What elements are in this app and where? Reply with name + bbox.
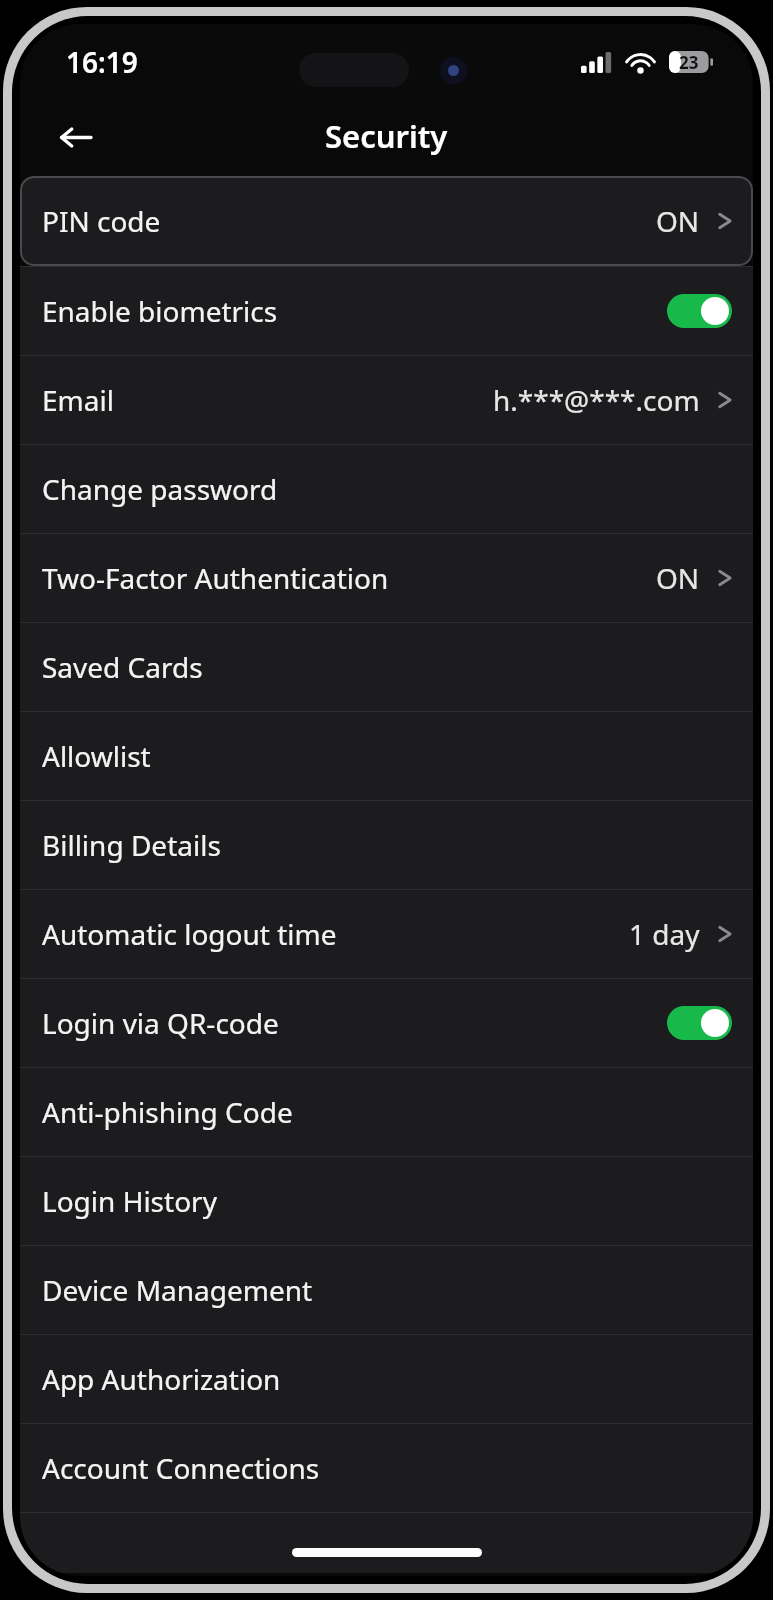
button[interactable]: Allowlist: [20, 712, 753, 800]
staticText: App Authorization: [42, 1360, 281, 1398]
staticText: ON: [656, 202, 700, 240]
staticText: 1 day: [629, 915, 700, 953]
button[interactable]: Toggle on: [667, 294, 732, 328]
staticText: Automatic logout time: [42, 915, 337, 953]
staticText: Login History: [42, 1182, 217, 1220]
staticText: Anti-phishing Code: [42, 1093, 293, 1131]
staticText: 16:19: [66, 43, 138, 81]
staticText: Allowlist: [42, 737, 151, 775]
staticText: Security: [325, 115, 448, 157]
staticText: Account Connections: [42, 1449, 320, 1487]
button[interactable]: Change password: [20, 445, 753, 533]
staticText: Billing Details: [42, 826, 221, 864]
staticText: Email: [42, 381, 114, 419]
button[interactable]: Anti-phishing Code: [20, 1068, 753, 1156]
staticText: Saved Cards: [42, 648, 203, 686]
staticText: Two-Factor Authentication: [42, 559, 389, 597]
button[interactable]: Saved Cards: [20, 623, 753, 711]
button[interactable]: Enable biometrics: [20, 267, 753, 355]
button[interactable]: Two-Factor Authentication: [20, 534, 753, 622]
button[interactable]: Account Connections: [20, 1424, 753, 1512]
button[interactable]: PIN code: [20, 176, 753, 266]
staticText: 23: [679, 51, 699, 73]
button[interactable]: Email: [20, 356, 753, 444]
staticText: Login via QR-code: [42, 1004, 279, 1042]
button[interactable]: Login via QR-code: [20, 979, 753, 1067]
staticText: Change password: [42, 470, 278, 508]
button[interactable]: Login History: [20, 1157, 753, 1245]
button[interactable]: Billing Details: [20, 801, 753, 889]
button[interactable]: Back: [46, 108, 104, 166]
staticText: h.***@***.com: [493, 381, 700, 419]
button[interactable]: Device Management: [20, 1246, 753, 1334]
button[interactable]: Automatic logout time: [20, 890, 753, 978]
staticText: PIN code: [42, 202, 161, 240]
button[interactable]: App Authorization: [20, 1335, 753, 1423]
staticText: Device Management: [42, 1271, 313, 1309]
button[interactable]: Toggle on: [667, 1006, 732, 1040]
staticText: ON: [656, 559, 700, 597]
staticText: Enable biometrics: [42, 292, 278, 330]
